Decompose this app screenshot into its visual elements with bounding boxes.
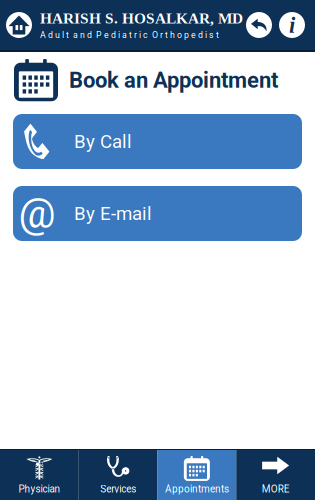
button[interactable]: Appointments: [157, 450, 236, 500]
button[interactable]: By Call: [13, 114, 302, 169]
button[interactable]: Physician: [0, 450, 79, 500]
staticText: By E-mail: [74, 203, 152, 224]
staticText: Appointments: [165, 483, 229, 495]
button[interactable]: Information: [279, 12, 305, 38]
staticText: i: [289, 12, 295, 37]
staticText: Physician: [18, 483, 60, 495]
staticText: MORE: [262, 483, 290, 495]
button[interactable]: Services: [79, 450, 158, 500]
staticText: @: [18, 189, 55, 238]
staticText: Book an Appointment: [69, 67, 278, 93]
button[interactable]: MORE: [236, 450, 315, 500]
staticText: Services: [100, 483, 136, 495]
staticText: HARISH S. HOSALKAR, MD: [40, 10, 243, 27]
staticText: By Call: [74, 131, 132, 152]
button[interactable]: Back: [246, 12, 272, 38]
button[interactable]: @: [13, 186, 302, 241]
staticText: A d u l t a n d P e d i a t r i c O r t …: [40, 30, 219, 40]
